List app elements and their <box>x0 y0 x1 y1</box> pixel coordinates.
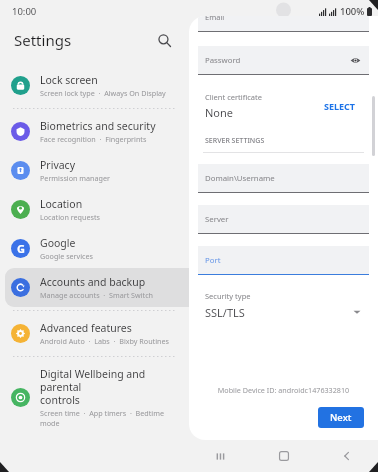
staticText: Privacy <box>40 158 76 172</box>
button[interactable]: Accounts and backup <box>5 268 189 307</box>
staticText: None <box>205 105 234 120</box>
staticText: Screen time · App timers · Bedtime mode <box>40 408 183 428</box>
button[interactable]: G <box>5 229 189 268</box>
staticText: Server <box>205 214 229 225</box>
button[interactable]: Search <box>151 27 177 53</box>
button[interactable]: Security type <box>205 291 362 320</box>
button[interactable]: Password <box>198 46 369 74</box>
staticText: Domain\Username <box>205 173 275 184</box>
button[interactable]: Digital Wellbeing and parental controls <box>5 360 189 435</box>
button[interactable]: Back <box>315 440 378 472</box>
staticText: Mobile Device ID: androidc1476332810 <box>189 385 378 395</box>
button[interactable]: Privacy <box>5 151 189 190</box>
staticText: SERVER SETTINGS <box>205 136 265 146</box>
staticText: Google services <box>40 251 94 261</box>
staticText: Biometrics and security <box>40 119 156 133</box>
staticText: 100% <box>340 5 365 18</box>
button[interactable]: Next <box>318 407 364 428</box>
staticText: Google <box>40 236 76 250</box>
button[interactable]: Home <box>252 440 315 472</box>
button[interactable]: Location <box>5 190 189 229</box>
staticText: Security type <box>205 291 251 301</box>
staticText: Settings <box>14 30 72 50</box>
staticText: Location <box>40 197 83 211</box>
staticText: Advanced features <box>40 321 132 335</box>
staticText: 10:00 <box>12 5 37 18</box>
button[interactable]: Advanced features <box>5 314 189 353</box>
button[interactable]: Server <box>198 205 369 233</box>
staticText: Permission manager <box>40 173 111 183</box>
staticText: Next <box>330 411 352 424</box>
staticText: G <box>17 241 25 256</box>
button[interactable]: Lock screen <box>5 66 189 105</box>
button[interactable]: Domain\Username <box>198 164 369 192</box>
button[interactable]: Email <box>198 16 369 31</box>
staticText: SELECT <box>324 100 356 112</box>
staticText: Client certificate <box>205 92 262 102</box>
staticText: Port <box>205 255 221 266</box>
staticText: Android Auto · Labs · Bixby Routines <box>40 336 170 346</box>
button[interactable]: Show password <box>349 54 361 66</box>
staticText: Password <box>205 55 241 66</box>
staticText: Location requests <box>40 212 100 222</box>
staticText: Accounts and backup <box>40 275 146 289</box>
button[interactable]: Recents <box>189 440 252 472</box>
button[interactable]: SELECT <box>318 94 362 118</box>
staticText: Screen lock type · Always On Display <box>40 88 166 98</box>
button[interactable]: Biometrics and security <box>5 112 189 151</box>
staticText: SSL/TLS <box>205 305 245 320</box>
staticText: Lock screen <box>40 73 98 87</box>
staticText: Digital Wellbeing and parental controls <box>40 367 183 407</box>
button[interactable]: Port <box>198 246 369 274</box>
staticText: Email <box>205 16 225 22</box>
staticText: Face recognition · Fingerprints <box>40 134 147 144</box>
staticText: Manage accounts · Smart Switch <box>40 290 154 300</box>
